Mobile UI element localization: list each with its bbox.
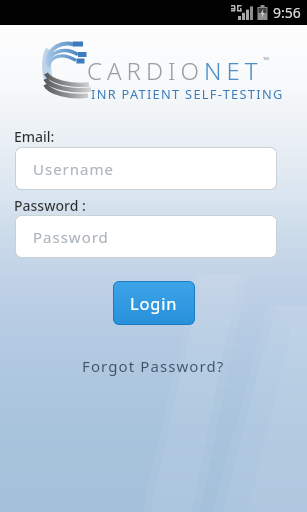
staticText: CARDIO (87, 54, 204, 87)
staticText: 9:56 (273, 3, 301, 22)
staticText: Login (130, 292, 178, 314)
staticText: Password (33, 227, 109, 247)
staticText: Email: (14, 127, 55, 146)
button[interactable]: Password (15, 215, 277, 258)
staticText: ™ (263, 54, 270, 65)
button[interactable]: Forgot Password? (82, 356, 225, 376)
staticText: Password : (14, 196, 86, 215)
staticText: Forgot Password? (82, 356, 225, 376)
staticText: NET (204, 54, 263, 87)
button[interactable]: Username (15, 147, 277, 190)
staticText: INR PATIENT SELF-TESTING (91, 85, 284, 102)
staticText: Username (33, 159, 114, 179)
button[interactable]: Login (113, 281, 195, 325)
